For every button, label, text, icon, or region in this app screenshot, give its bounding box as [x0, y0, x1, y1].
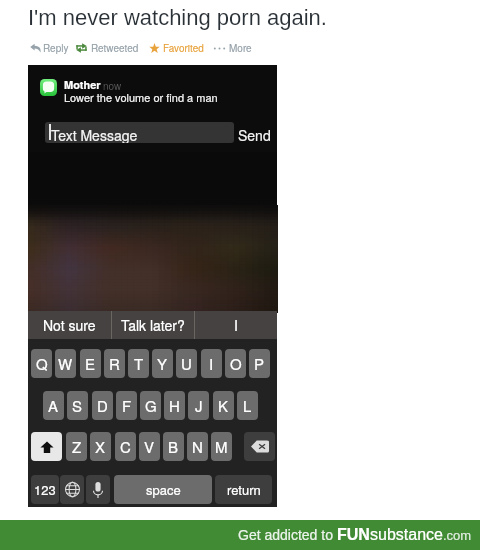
staticText: H [169, 395, 180, 416]
button[interactable]: F [116, 391, 137, 420]
staticText: O [230, 353, 242, 374]
button[interactable]: Y [152, 349, 173, 378]
button[interactable]: C [115, 432, 136, 461]
button[interactable]: Talk later? [112, 311, 194, 339]
staticText: E [85, 353, 96, 374]
button[interactable]: X [90, 432, 111, 461]
staticText: R [109, 353, 120, 374]
staticText: Q [36, 353, 48, 374]
other: Shift [40, 440, 54, 454]
staticText: F [122, 395, 132, 416]
button[interactable]: Retweeted [75, 41, 139, 55]
button[interactable]: Backspace [244, 432, 275, 461]
button[interactable]: B [163, 432, 184, 461]
button[interactable]: Favorited [149, 41, 204, 55]
staticText: P [254, 353, 265, 374]
staticText: now [103, 79, 122, 93]
button[interactable]: Not sure [28, 311, 111, 339]
staticText: G [145, 395, 157, 416]
staticText: B [168, 436, 179, 457]
button[interactable]: H [164, 391, 185, 420]
staticText: Not sure [43, 315, 96, 335]
button[interactable]: Q [31, 349, 52, 378]
staticText: C [120, 436, 131, 457]
staticText: Favorited [163, 41, 204, 55]
staticText: U [181, 353, 192, 374]
staticText: Retweeted [91, 41, 139, 55]
staticText: 123 [34, 480, 56, 499]
staticText: D [97, 395, 108, 416]
staticText: FUN [337, 526, 370, 544]
staticText: I [234, 315, 238, 335]
other: Backspace [251, 440, 269, 453]
button[interactable]: R [104, 349, 125, 378]
staticText: T [134, 353, 144, 374]
button[interactable]: Send [238, 125, 271, 145]
button[interactable]: N [187, 432, 208, 461]
other: Dictation [93, 482, 103, 498]
button[interactable]: A [43, 391, 64, 420]
button[interactable]: W [55, 349, 76, 378]
button[interactable]: space [114, 475, 212, 504]
staticText: X [95, 436, 106, 457]
staticText: L [243, 395, 252, 416]
button[interactable]: Dictation [86, 475, 110, 504]
button[interactable]: T [128, 349, 149, 378]
staticText: I [209, 353, 214, 374]
button[interactable]: P [249, 349, 270, 378]
button[interactable]: return [215, 475, 272, 504]
staticText: space [146, 480, 181, 499]
staticText: More [229, 41, 252, 55]
staticText: M [215, 436, 228, 457]
staticText: Mother [64, 77, 101, 93]
staticText: W [58, 353, 73, 374]
button[interactable]: E [80, 349, 101, 378]
button[interactable]: J [188, 391, 209, 420]
staticText: Talk later? [121, 315, 185, 335]
staticText: K [218, 395, 229, 416]
button[interactable]: K [213, 391, 234, 420]
staticText: A [48, 395, 59, 416]
staticText: .com [443, 528, 472, 543]
button[interactable]: I [195, 311, 277, 339]
staticText: substance [370, 526, 443, 544]
staticText: Lower the volume or find a man [64, 89, 218, 105]
button[interactable]: O [225, 349, 246, 378]
staticText: V [144, 436, 155, 457]
button[interactable]: 123 [31, 475, 59, 504]
button[interactable]: Change keyboard [60, 475, 84, 504]
staticText: Y [157, 353, 168, 374]
button[interactable]: G [140, 391, 161, 420]
button[interactable]: L [237, 391, 258, 420]
staticText: Text Message [51, 125, 138, 143]
button[interactable]: Text Message [45, 122, 234, 143]
button[interactable]: S [67, 391, 88, 420]
button[interactable]: Get addicted to [238, 526, 472, 544]
button[interactable]: Reply [30, 41, 69, 55]
button[interactable]: M [211, 432, 232, 461]
staticText: Send [238, 125, 271, 145]
button[interactable]: More [213, 41, 252, 55]
button[interactable]: Shift [31, 432, 62, 461]
staticText: J [195, 395, 203, 416]
button[interactable]: Z [66, 432, 87, 461]
other: Change keyboard [65, 482, 80, 497]
button[interactable]: U [176, 349, 197, 378]
staticText: Z [72, 436, 82, 457]
staticText: return [227, 480, 261, 499]
staticText: N [192, 436, 203, 457]
staticText: Get addicted to [238, 527, 337, 543]
staticText: S [72, 395, 83, 416]
button[interactable]: V [139, 432, 160, 461]
button[interactable]: I [201, 349, 222, 378]
button[interactable]: D [92, 391, 113, 420]
staticText: I'm never watching porn again. [28, 5, 327, 30]
staticText: Reply [43, 41, 69, 55]
